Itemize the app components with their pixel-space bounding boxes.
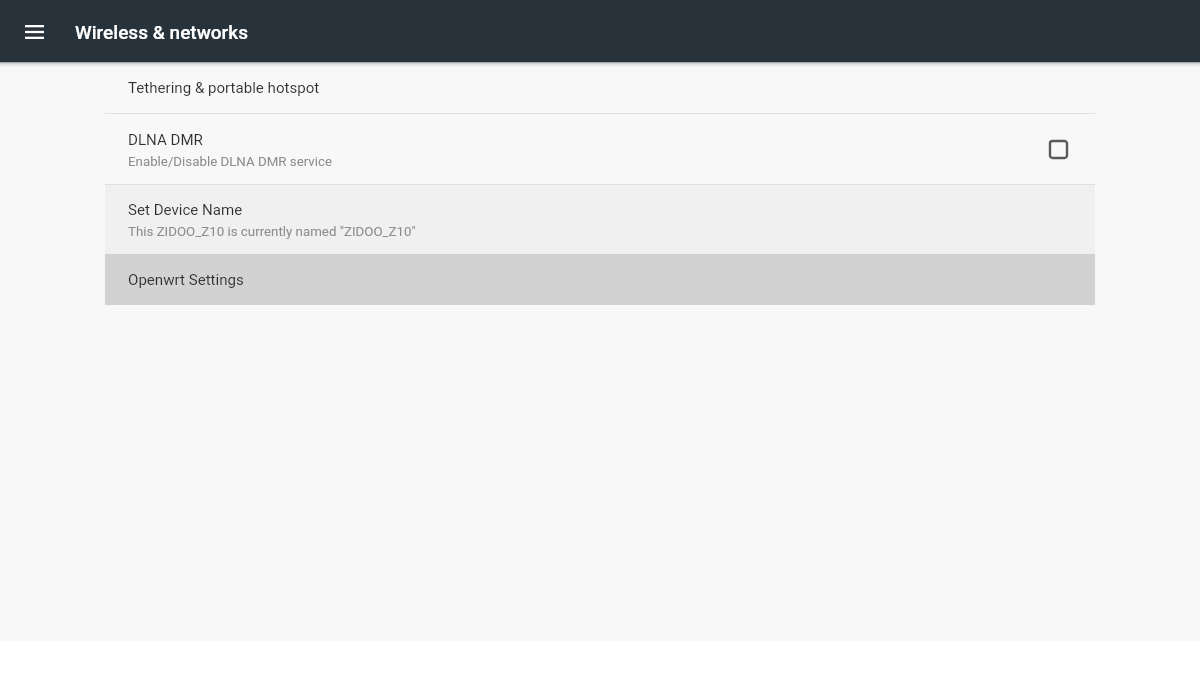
button[interactable]: Set Device Name xyxy=(105,185,1095,254)
staticText: DLNA DMR xyxy=(128,131,203,149)
button[interactable]: DLNA DMR xyxy=(105,114,1095,184)
staticText: This ZIDOO_Z10 is currently named "ZIDOO… xyxy=(128,224,416,240)
button[interactable]: Openwrt Settings xyxy=(105,254,1095,305)
staticText: Enable/Disable DLNA DMR service xyxy=(128,154,332,170)
button[interactable]: Open navigation menu xyxy=(0,0,68,62)
staticText: Tethering & portable hotspot xyxy=(128,79,320,97)
button[interactable]: Tethering & portable hotspot xyxy=(105,62,1095,113)
staticText: Set Device Name xyxy=(128,201,243,219)
button[interactable]: Toggle DLNA DMR xyxy=(1034,125,1082,173)
staticText: Openwrt Settings xyxy=(128,271,244,289)
staticText: Wireless & networks xyxy=(75,21,249,43)
